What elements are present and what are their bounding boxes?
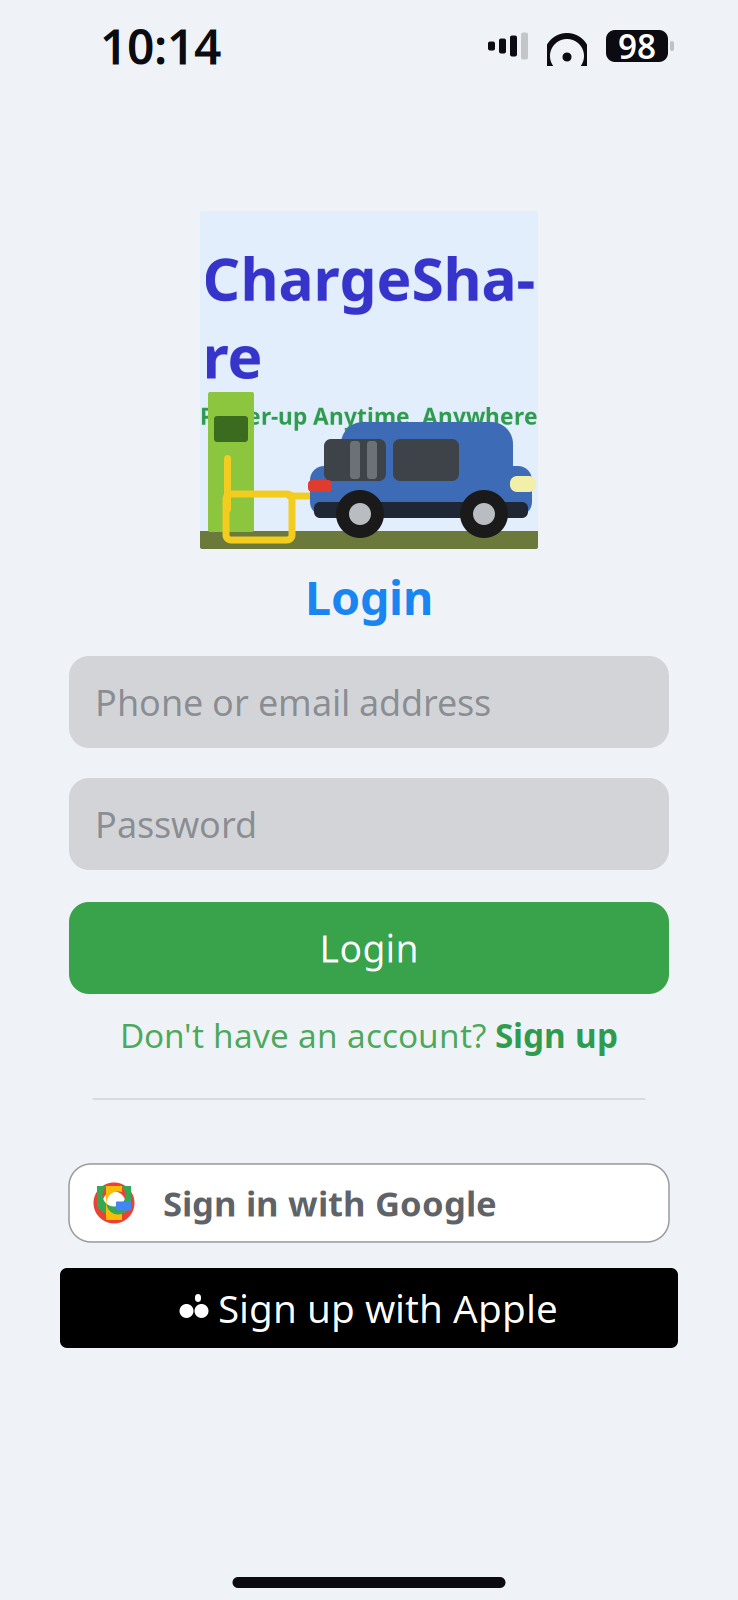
staticText: ChargeShare <box>202 239 535 395</box>
button[interactable]: Sign in with Google <box>69 1164 669 1242</box>
staticText: Power-up Anytime, Anywhere <box>200 401 538 431</box>
button[interactable]: Don't have an account? <box>69 1016 669 1054</box>
staticText: Don't have an account? <box>120 1013 495 1057</box>
button[interactable]: Login <box>69 902 669 994</box>
staticText: Password <box>95 800 257 848</box>
staticText: Phone or email address <box>95 678 491 726</box>
staticText: Login <box>305 566 433 628</box>
staticText: 10:14 <box>100 14 221 78</box>
staticText: Login <box>319 923 418 973</box>
staticText: 98 <box>618 24 656 68</box>
staticText: Sign up <box>495 1013 618 1057</box>
button[interactable]: Password <box>69 778 669 870</box>
staticText: Sign in with Google <box>163 1180 497 1226</box>
button[interactable]: Sign up with Apple <box>60 1268 678 1348</box>
staticText: Sign up with Apple <box>218 1282 558 1334</box>
button[interactable]: Phone or email address <box>69 656 669 748</box>
